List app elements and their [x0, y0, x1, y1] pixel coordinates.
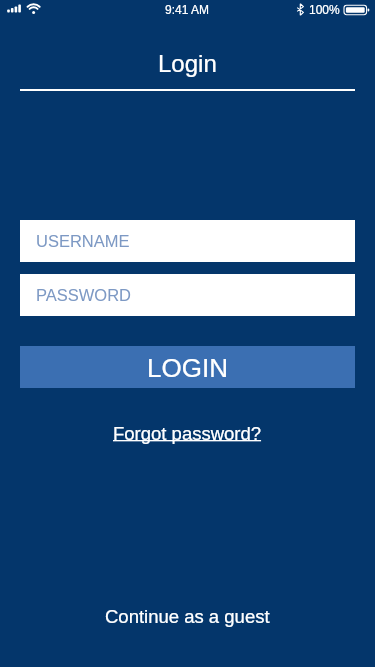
staticText: LOGIN: [147, 353, 228, 382]
button[interactable]: USERNAME: [20, 220, 355, 262]
staticText: Continue as a guest: [105, 606, 270, 627]
staticText: PASSWORD: [36, 286, 132, 304]
staticText: Forgot password?: [113, 423, 262, 444]
staticText: USERNAME: [36, 232, 130, 250]
button[interactable]: Forgot password?: [113, 423, 262, 444]
staticText: 9:41 AM: [165, 3, 210, 16]
staticText: Login: [158, 50, 217, 77]
button[interactable]: Continue as a guest: [105, 606, 270, 627]
staticText: 100%: [309, 3, 340, 16]
button[interactable]: PASSWORD: [20, 274, 355, 316]
button[interactable]: LOGIN: [20, 346, 355, 388]
